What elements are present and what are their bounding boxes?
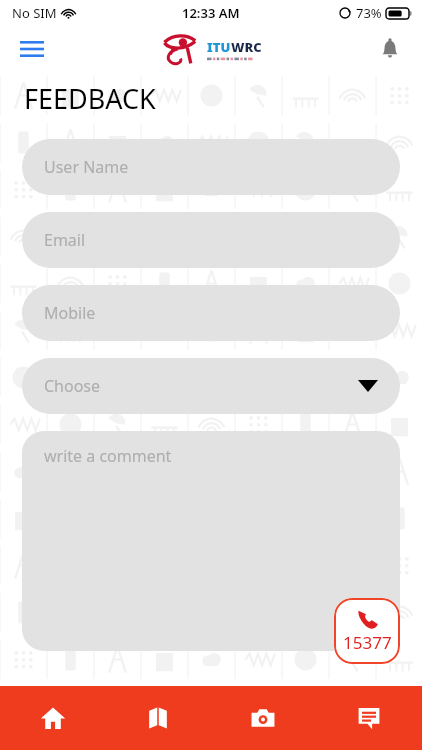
staticText: write a comment [44,445,172,467]
button[interactable]: Choose [22,358,400,414]
button[interactable]: Feedback [316,686,422,750]
button[interactable]: Call 15377 [334,598,400,664]
staticText: WRC [231,38,262,56]
button[interactable]: Camera [210,686,316,750]
button[interactable]: User Name [22,139,400,195]
button[interactable]: Email [22,212,400,268]
button[interactable]: Map [105,686,210,750]
staticText: Mobile [44,302,96,324]
staticText: 73% [356,4,382,22]
staticText: ITU [207,38,231,56]
staticText: No SIM [12,4,57,22]
button[interactable]: Home [0,686,105,750]
staticText: Choose [44,375,101,397]
button[interactable]: Notifications [370,29,410,69]
staticText: 15377 [343,631,392,654]
staticText: 12:33 AM [182,4,240,22]
button[interactable]: write a comment [22,431,400,651]
staticText: FEEDBACK [24,80,156,117]
button[interactable]: Menu [12,29,52,69]
staticText: User Name [44,156,129,178]
button[interactable]: Mobile [22,285,400,341]
staticText: Email [44,229,86,251]
